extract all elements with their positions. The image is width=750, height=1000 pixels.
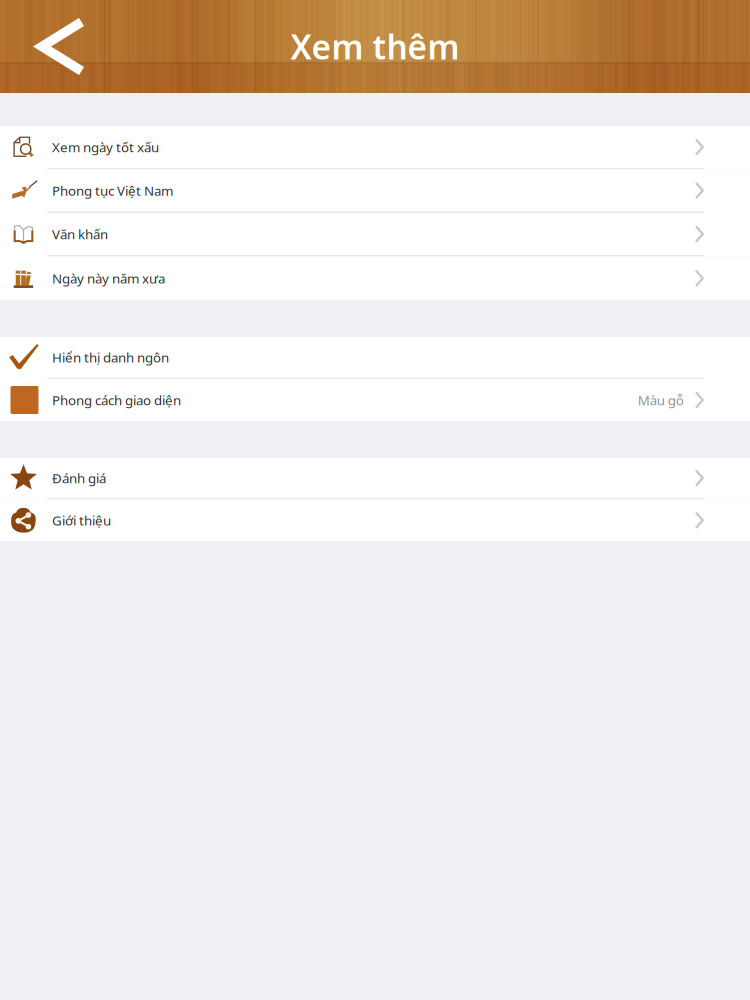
button[interactable]: Ngày này năm xưa [0, 256, 750, 300]
staticText: Giới thiệu [52, 511, 111, 529]
button[interactable]: Giới thiệu [0, 499, 750, 541]
button[interactable]: Back [35, 17, 88, 76]
staticText: Ngày này năm xưa [52, 269, 165, 287]
staticText: Xem thêm [290, 24, 459, 69]
staticText: Văn khấn [52, 225, 108, 243]
staticText: Màu gỗ [638, 391, 684, 409]
staticText: Phong cách giao diện [52, 391, 181, 409]
button[interactable]: Phong cách giao diện [0, 379, 750, 421]
button[interactable]: Hiển thị danh ngôn [0, 337, 750, 379]
button[interactable]: Xem ngày tốt xấu [0, 126, 750, 169]
staticText: Xem ngày tốt xấu [52, 138, 159, 156]
button[interactable]: Đánh giá [0, 458, 750, 499]
staticText: Phong tục Việt Nam [52, 182, 173, 199]
button[interactable]: Văn khấn [0, 213, 750, 256]
staticText: Hiển thị danh ngôn [52, 348, 169, 366]
button[interactable]: Phong tục Việt Nam [0, 169, 750, 213]
staticText: Đánh giá [52, 469, 106, 487]
